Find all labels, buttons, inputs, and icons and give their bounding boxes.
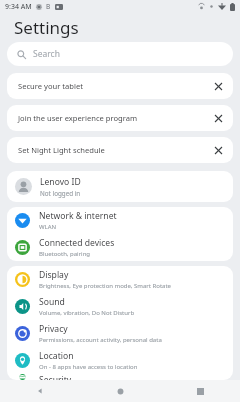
- staticText: Location: [39, 350, 74, 362]
- staticText: Settings: [14, 16, 79, 39]
- staticText: Security: [39, 374, 72, 380]
- staticText: Bluetooth, pairing: [39, 250, 91, 258]
- button[interactable]: Join the user experience program: [7, 105, 233, 131]
- staticText: Privacy: [39, 323, 68, 335]
- button[interactable]: Lenovo ID: [7, 171, 233, 202]
- staticText: On - 8 apps have access to location: [39, 363, 138, 371]
- button[interactable]: Home: [80, 380, 160, 402]
- button[interactable]: Privacy: [7, 320, 233, 347]
- staticText: Volume, vibration, Do Not Disturb: [39, 309, 135, 317]
- staticText: Search: [33, 48, 60, 60]
- button[interactable]: Network & internet: [7, 207, 233, 234]
- button[interactable]: Connected devices: [7, 234, 233, 261]
- staticText: Join the user experience program: [18, 113, 209, 123]
- button[interactable]: Security: [7, 374, 233, 380]
- staticText: Lenovo ID: [40, 176, 81, 188]
- staticText: Not logged in: [40, 189, 81, 198]
- staticText: 9:34 AM: [5, 2, 32, 12]
- button[interactable]: Location: [7, 347, 233, 374]
- button[interactable]: Dismiss: [209, 109, 227, 127]
- button[interactable]: Search: [7, 42, 233, 66]
- button[interactable]: Dismiss: [209, 141, 227, 159]
- staticText: Permissions, account activity, personal …: [39, 336, 162, 344]
- button[interactable]: Back: [0, 380, 80, 402]
- staticText: Connected devices: [39, 237, 115, 249]
- staticText: Brightness, Eye protection mode, Smart R…: [39, 282, 171, 290]
- staticText: Sound: [39, 296, 65, 308]
- button[interactable]: Display: [7, 266, 233, 293]
- staticText: Display: [39, 269, 69, 281]
- staticText: Network & internet: [39, 210, 117, 222]
- staticText: Set Night Light schedule: [18, 145, 209, 155]
- button[interactable]: Secure your tablet: [7, 73, 233, 99]
- staticText: WLAN: [39, 223, 57, 231]
- staticText: Secure your tablet: [18, 81, 209, 91]
- button[interactable]: Sound: [7, 293, 233, 320]
- button[interactable]: Set Night Light schedule: [7, 137, 233, 163]
- button[interactable]: Recent apps: [160, 380, 240, 402]
- staticText: B: [46, 2, 51, 11]
- button[interactable]: Dismiss: [209, 77, 227, 95]
